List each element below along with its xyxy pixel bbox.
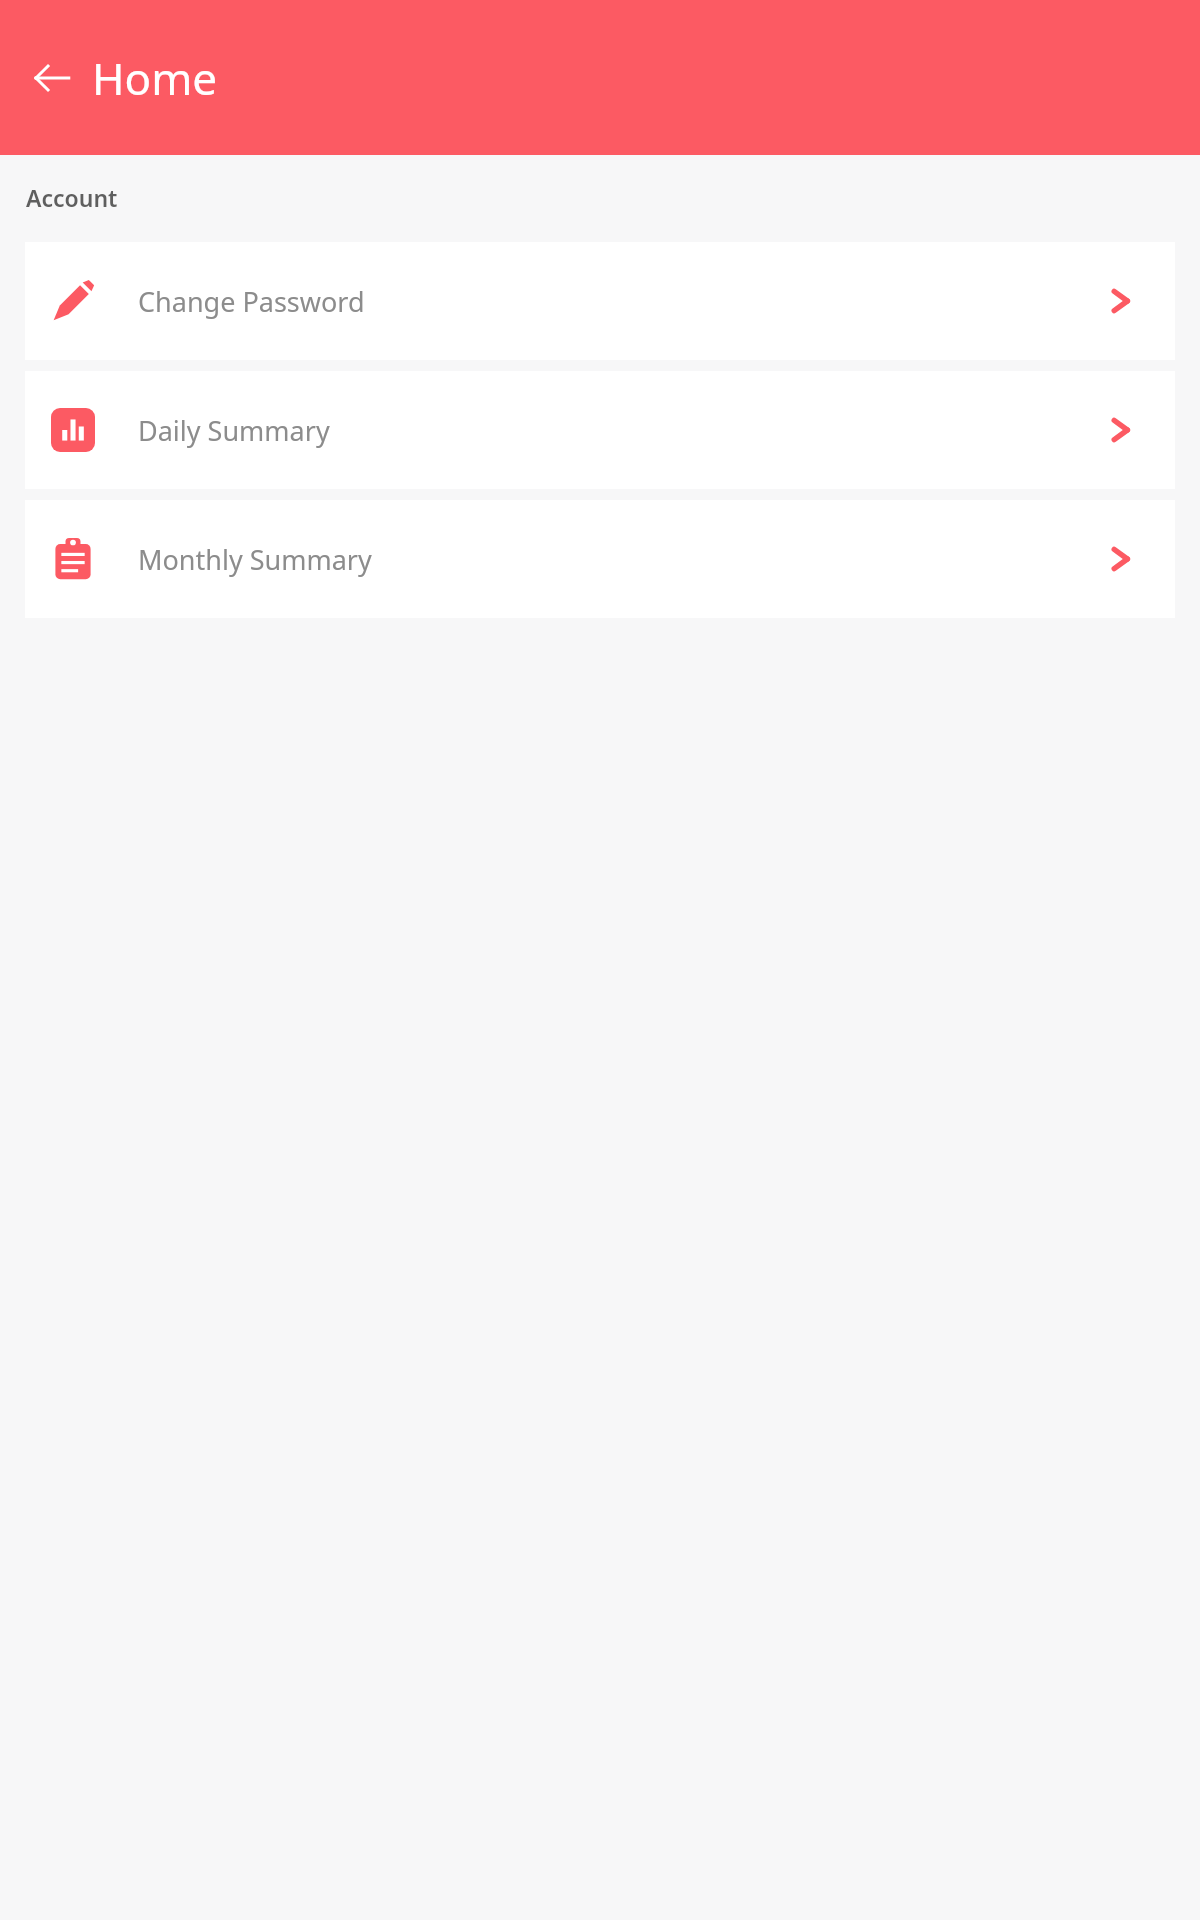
staticText: Account [26, 182, 118, 213]
button[interactable]: Back [26, 52, 78, 104]
button[interactable]: Daily Summary [25, 371, 1175, 489]
staticText: Monthly Summary [138, 541, 1099, 578]
staticText: Daily Summary [138, 412, 1099, 449]
staticText: Change Password [138, 283, 1099, 320]
staticText: Home [92, 48, 218, 108]
button[interactable]: Monthly Summary [25, 500, 1175, 618]
button[interactable]: Change Password [25, 242, 1175, 360]
